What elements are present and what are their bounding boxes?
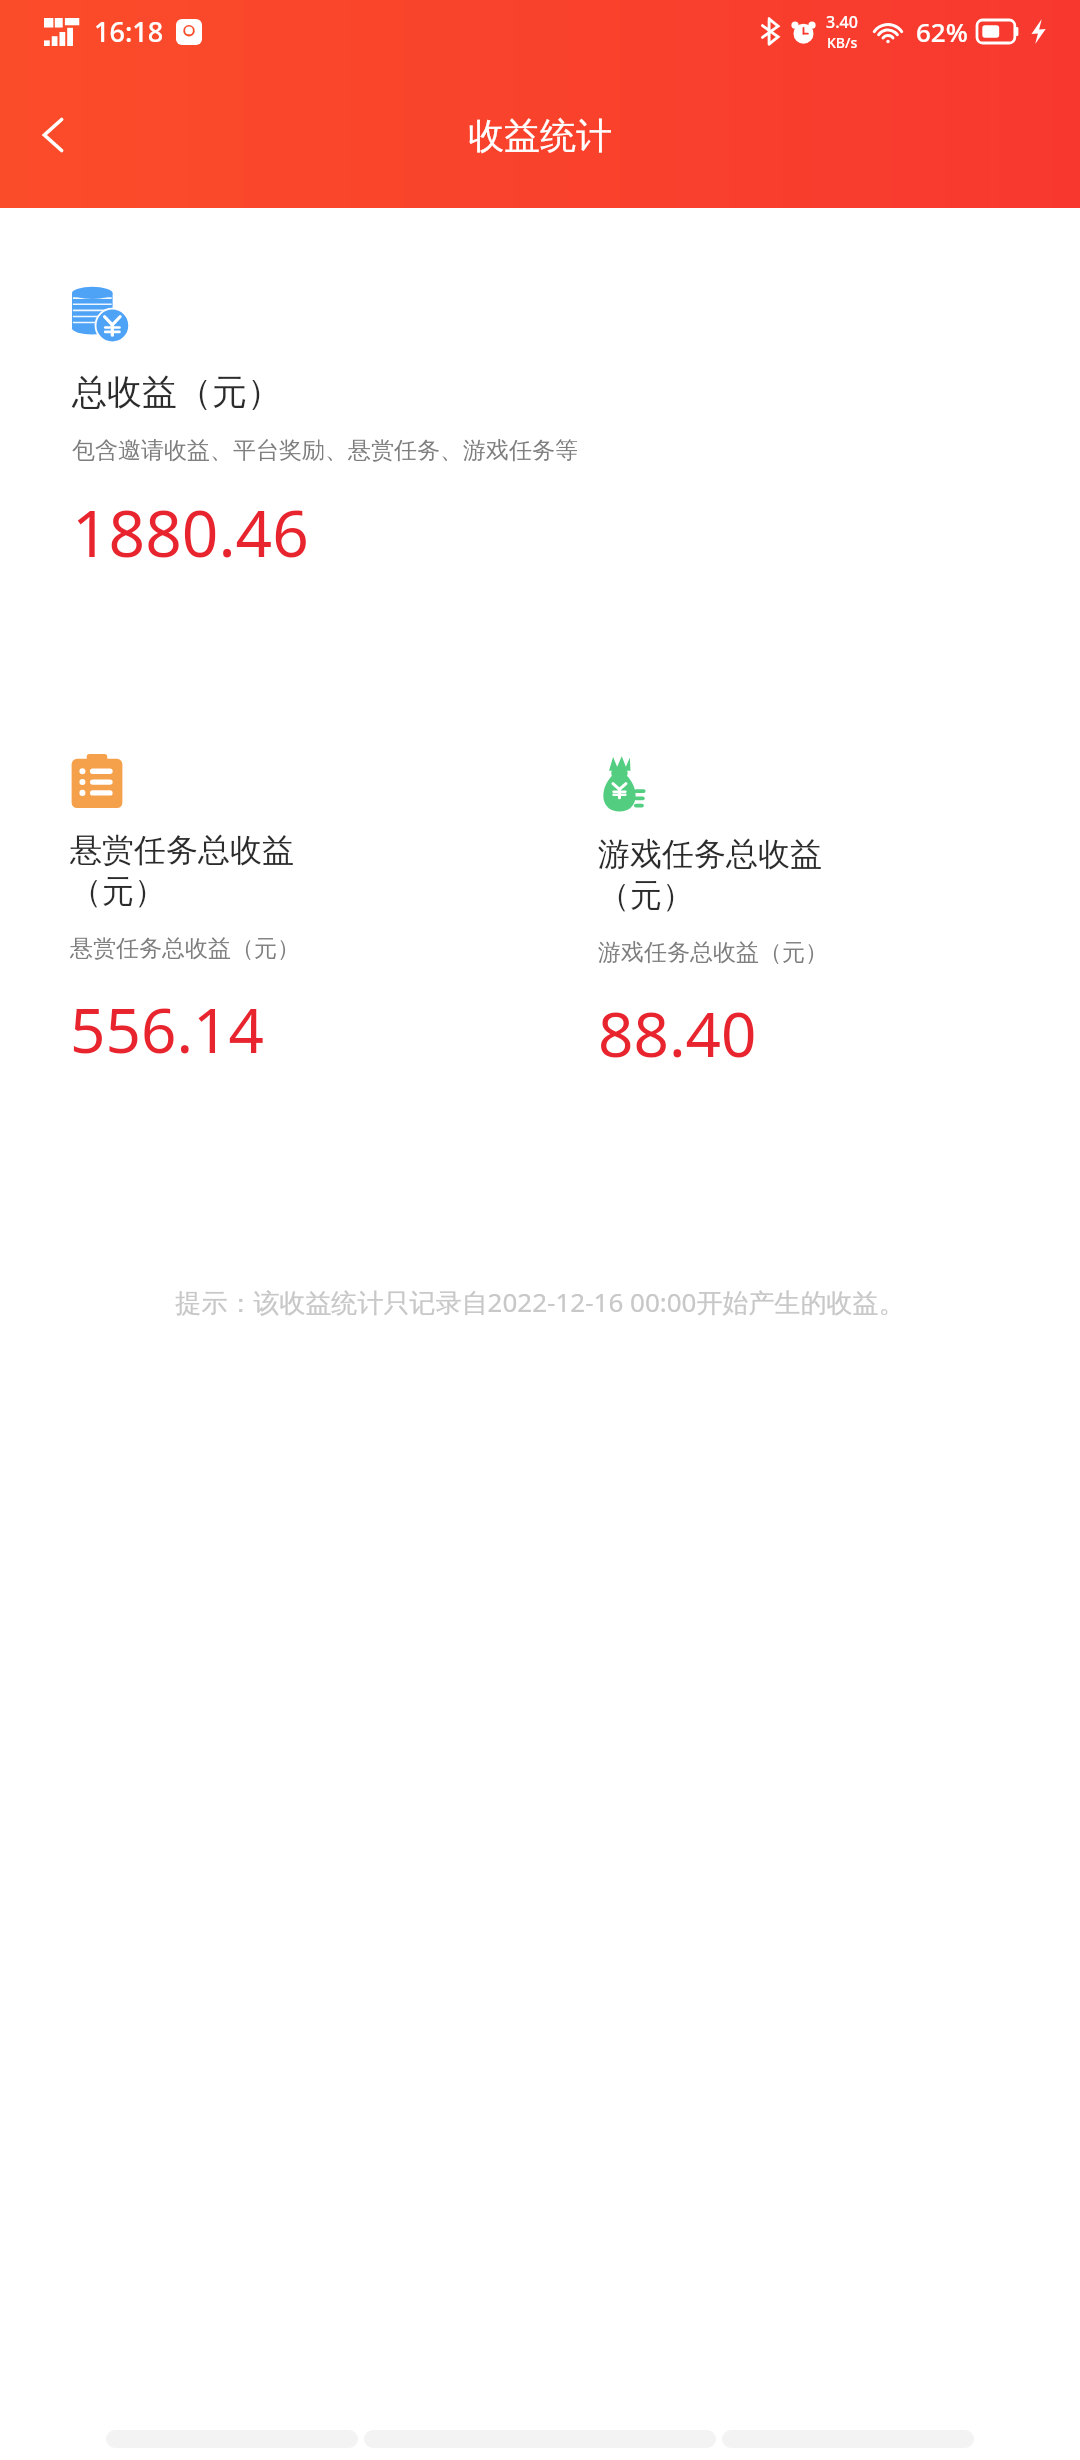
staticText: KB/s: [827, 33, 858, 52]
staticText: 游戏任务总收益（元）: [598, 938, 828, 967]
staticText: 3.40: [826, 11, 858, 33]
staticText: 1880.46: [72, 489, 309, 576]
button[interactable]: 悬赏任务总收益 （元）: [34, 710, 518, 1172]
button[interactable]: Back: [10, 92, 96, 178]
staticText: 提示：该收益统计只记录自2022-12-16 00:00开始产生的收益。: [20, 1284, 1060, 1320]
staticText: 88.40: [598, 991, 757, 1075]
staticText: 556.14: [70, 987, 264, 1071]
button[interactable]: 游戏任务总收益 （元）: [562, 710, 1046, 1172]
staticText: 62%: [916, 14, 968, 49]
staticText: 包含邀请收益、平台奖励、悬赏任务、游戏任务等: [72, 436, 578, 465]
staticText: 16:18: [94, 13, 164, 50]
staticText: 悬赏任务总收益 （元）: [70, 830, 294, 912]
staticText: 收益统计: [468, 113, 612, 158]
staticText: 游戏任务总收益 （元）: [598, 834, 822, 916]
staticText: 悬赏任务总收益（元）: [70, 934, 300, 963]
staticText: 总收益（元）: [72, 370, 282, 414]
